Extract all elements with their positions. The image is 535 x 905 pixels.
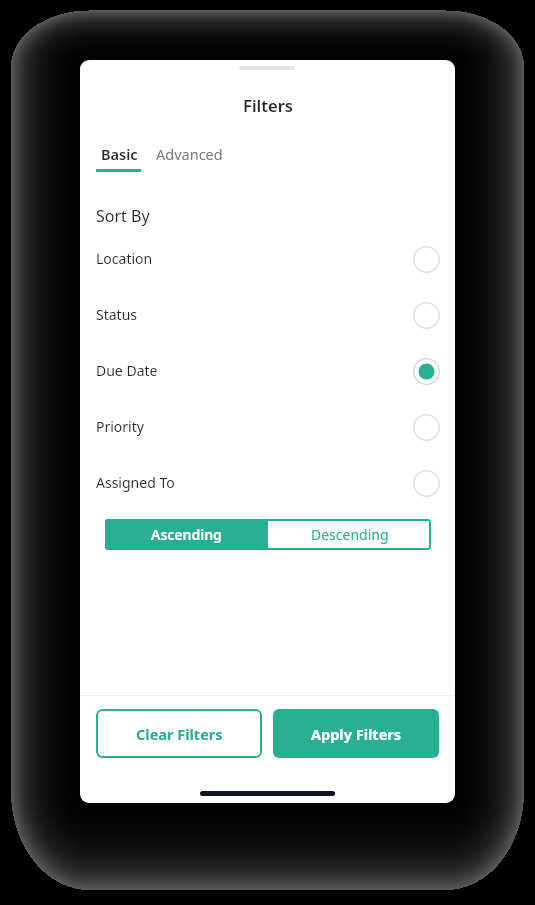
button[interactable]: Basic [91, 138, 146, 172]
staticText: Sort By [96, 205, 150, 227]
button[interactable]: Assigned To [80, 454, 455, 510]
other: Priority [413, 414, 440, 441]
staticText: Descending [311, 525, 389, 544]
staticText: Filters [243, 94, 293, 116]
other: Due Date [413, 358, 440, 385]
staticText: Status [96, 305, 138, 324]
other: Location [413, 246, 440, 273]
staticText: Basic [101, 144, 138, 164]
staticText: Clear Filters [136, 724, 223, 744]
staticText: Apply Filters [311, 724, 402, 744]
button[interactable]: Priority [80, 398, 455, 454]
button[interactable]: Apply Filters [273, 709, 439, 758]
staticText: Location [96, 249, 153, 268]
other: Assigned To [413, 470, 440, 497]
button[interactable]: Descending [268, 519, 431, 550]
button[interactable]: Location [80, 230, 455, 286]
staticText: Advanced [156, 144, 223, 164]
button[interactable]: Ascending [105, 519, 268, 550]
staticText: Priority [96, 417, 144, 436]
staticText: Ascending [151, 525, 222, 544]
staticText: Due Date [96, 361, 158, 380]
other: Status [413, 302, 440, 329]
button[interactable]: Due Date [80, 342, 455, 398]
button[interactable]: Status [80, 286, 455, 342]
staticText: Assigned To [96, 473, 175, 492]
button[interactable]: Clear Filters [96, 709, 262, 758]
button[interactable]: Advanced [151, 138, 226, 172]
